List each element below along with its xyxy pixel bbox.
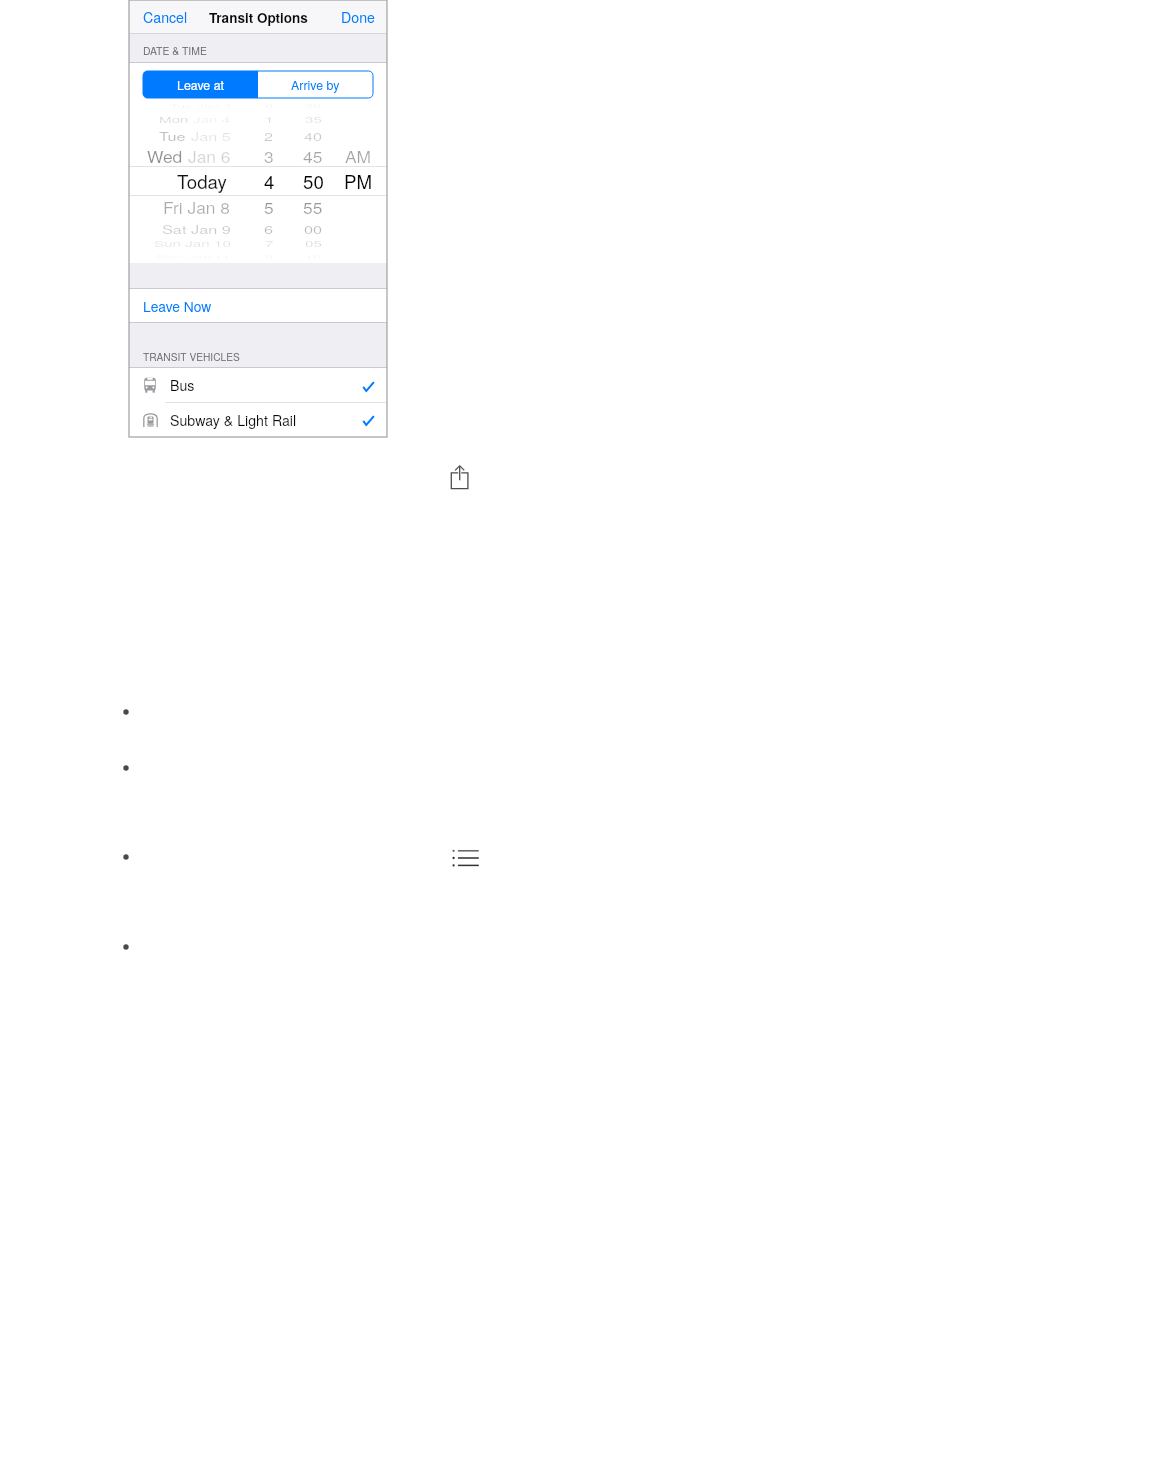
staticText: Bus xyxy=(170,375,195,395)
staticText: Jan 4 xyxy=(193,114,231,126)
staticText: Jan 6 xyxy=(188,145,231,168)
staticText: Tue xyxy=(159,127,191,143)
staticText: 45 xyxy=(303,145,323,168)
button[interactable]: Cancel xyxy=(129,0,196,34)
staticText: 1 xyxy=(265,114,274,126)
staticText: Leave at xyxy=(177,76,225,94)
staticText: 40 xyxy=(304,127,323,143)
staticText: AM xyxy=(345,145,372,168)
staticText: Jan 5 xyxy=(191,127,231,143)
staticText: Transit Options xyxy=(209,8,308,27)
staticText: 0 xyxy=(265,102,273,110)
staticText: 35 xyxy=(305,114,322,126)
button[interactable]: Leave Now xyxy=(129,289,387,322)
button[interactable]: Bus xyxy=(129,368,387,402)
staticText: Sat Jan 9 xyxy=(162,220,231,236)
staticText: Wed xyxy=(147,145,188,168)
staticText: Done xyxy=(341,7,375,27)
staticText: Cancel xyxy=(143,7,188,27)
staticText: 55 xyxy=(303,196,323,219)
button[interactable]: Arrive by xyxy=(258,71,373,98)
staticText: 2 xyxy=(264,127,274,143)
staticText: DATE & TIME xyxy=(143,43,207,58)
button[interactable]: List xyxy=(450,845,482,871)
staticText: 50 xyxy=(303,168,324,194)
staticText: Sun Jan 10 xyxy=(154,238,231,250)
staticText: Arrive by xyxy=(291,76,340,94)
staticText: 5 xyxy=(264,196,274,219)
staticText: 6 xyxy=(264,220,274,236)
staticText: Fri Jan 8 xyxy=(163,196,231,219)
staticText: 4 xyxy=(264,168,275,194)
staticText: Subway & Light Rail xyxy=(170,410,297,430)
staticText: 7 xyxy=(265,238,274,250)
button[interactable]: Subway & Light Rail xyxy=(129,403,387,436)
staticText: PM xyxy=(344,168,373,194)
staticText: 00 xyxy=(304,220,323,236)
staticText: Mon xyxy=(159,114,193,126)
button[interactable]: Leave at xyxy=(143,71,258,98)
staticText: 05 xyxy=(305,238,322,250)
staticText: Leave Now xyxy=(143,296,212,316)
button[interactable]: Share xyxy=(447,462,473,492)
staticText: 3 xyxy=(264,145,274,168)
button[interactable]: Done xyxy=(333,0,387,34)
staticText: TRANSIT VEHICLES xyxy=(143,349,240,364)
staticText: Today xyxy=(177,168,227,194)
